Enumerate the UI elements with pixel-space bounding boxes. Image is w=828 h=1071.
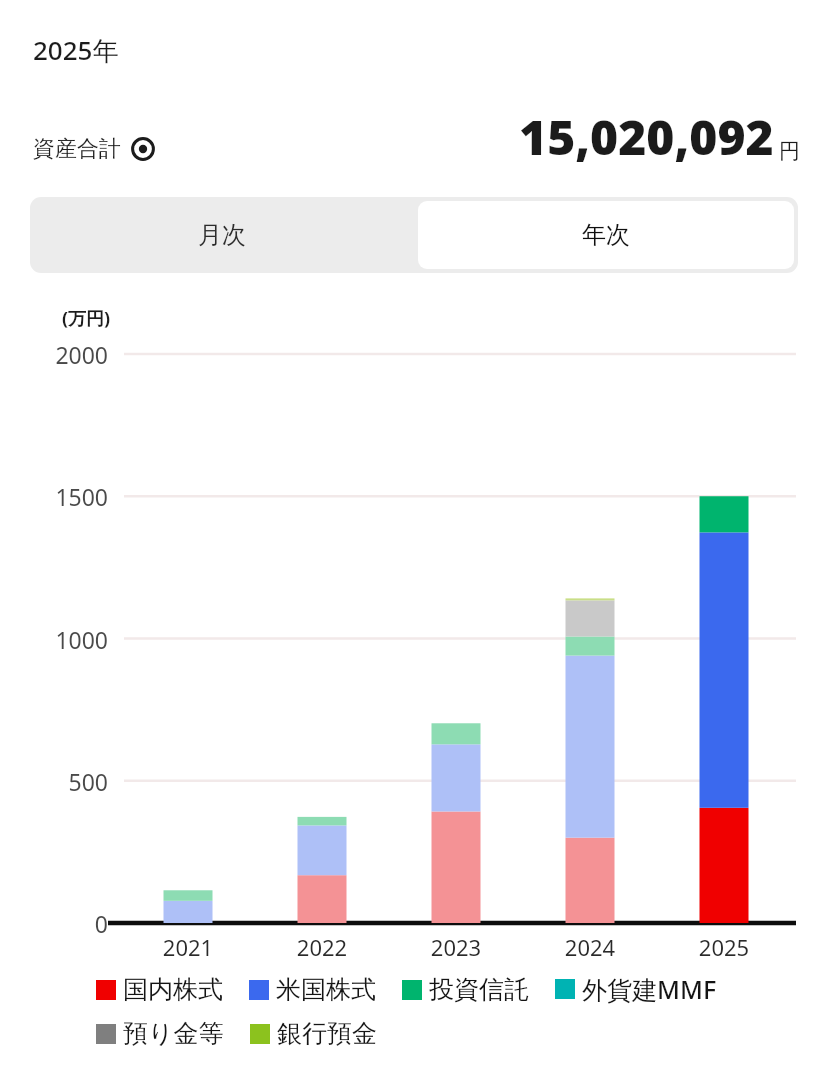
button[interactable]: 国内株式 <box>96 974 223 1005</box>
staticText: 国内株式 <box>123 974 223 1005</box>
staticText: 預り金等 <box>123 1018 224 1049</box>
button[interactable]: 預り金等 <box>96 1018 224 1049</box>
staticText: 2021 <box>143 932 233 962</box>
staticText: 2000 <box>0 339 108 370</box>
button[interactable]: 投資信託 <box>402 974 529 1005</box>
staticText: 資産合計 <box>33 135 121 163</box>
staticText: 2022 <box>277 932 367 962</box>
staticText: 15,020,092 <box>519 104 774 169</box>
staticText: 2024 <box>545 932 635 962</box>
staticText: 月次 <box>198 220 246 250</box>
staticText: 米国株式 <box>276 974 376 1005</box>
staticText: 年次 <box>582 220 630 250</box>
button[interactable]: 月次 <box>30 197 414 273</box>
staticText: 0 <box>0 908 108 939</box>
staticText: 外貨建MMF <box>582 972 717 1006</box>
staticText: 2025年 <box>33 32 119 68</box>
button[interactable]: 年次 <box>418 201 794 269</box>
button[interactable]: 外貨建MMF <box>555 972 717 1006</box>
staticText: 投資信託 <box>429 974 529 1005</box>
staticText: 円 <box>779 138 800 164</box>
button[interactable]: 米国株式 <box>249 974 376 1005</box>
staticText: 1000 <box>0 624 108 655</box>
staticText: 500 <box>0 766 108 797</box>
staticText: 1500 <box>0 481 108 512</box>
staticText: 銀行預金 <box>277 1018 377 1049</box>
button[interactable]: 資産合計の表示を切り替え <box>130 136 156 162</box>
staticText: 2023 <box>411 932 501 962</box>
staticText: 2025 <box>679 932 769 962</box>
staticText: (万円) <box>62 306 111 331</box>
button[interactable]: 銀行預金 <box>250 1018 377 1049</box>
